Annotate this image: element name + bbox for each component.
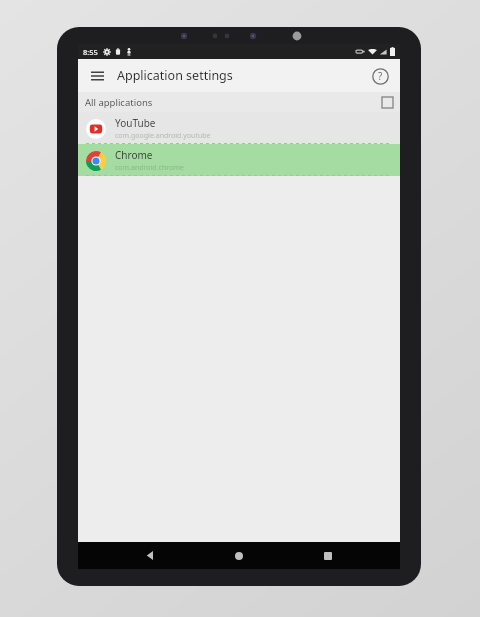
button[interactable]: YouTube <box>78 112 400 144</box>
button[interactable]: Back <box>133 542 167 569</box>
staticText: com.google.android.youtube <box>115 131 211 141</box>
staticText: Application settings <box>117 67 233 84</box>
button[interactable]: Home <box>222 542 256 569</box>
staticText: YouTube <box>115 116 156 130</box>
button[interactable]: Chrome <box>78 144 400 176</box>
staticText: 8:55 <box>83 47 98 57</box>
button[interactable]: Select all applications <box>382 97 393 108</box>
button[interactable]: All applications <box>78 92 400 112</box>
staticText: Chrome <box>115 148 153 162</box>
button[interactable]: Recent apps <box>311 542 345 569</box>
staticText: ? <box>378 69 383 83</box>
staticText: com.android.chrome <box>115 163 184 173</box>
staticText: All applications <box>85 96 153 109</box>
button[interactable]: Help <box>367 63 393 89</box>
button[interactable]: Open navigation menu <box>84 63 110 89</box>
